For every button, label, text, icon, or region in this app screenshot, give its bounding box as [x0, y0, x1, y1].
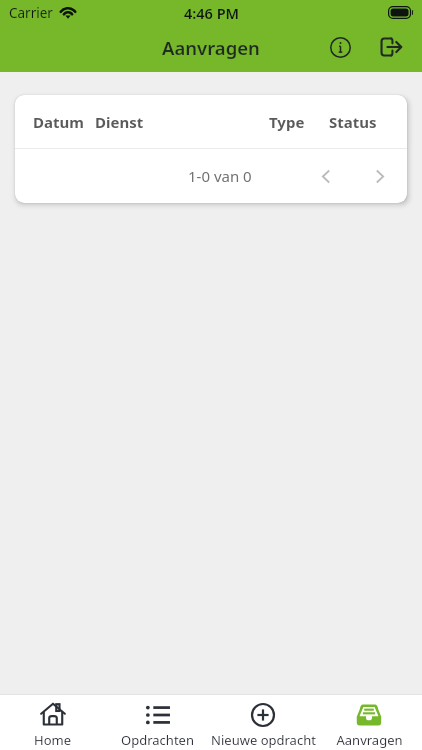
staticText: Status	[329, 112, 377, 132]
button[interactable]: Nieuwe opdracht	[210, 695, 316, 750]
staticText: Datum	[33, 112, 84, 132]
staticText: Carrier	[9, 4, 53, 22]
staticText: Aanvragen	[336, 731, 403, 749]
button[interactable]: Next page	[364, 160, 396, 192]
staticText: Type	[269, 112, 305, 132]
staticText: 1-0 van 0	[188, 166, 252, 186]
button[interactable]: Log out	[370, 26, 412, 68]
button[interactable]: Opdrachten	[105, 695, 210, 750]
button[interactable]: Previous page	[310, 160, 342, 192]
staticText: Nieuwe opdracht	[211, 731, 316, 749]
staticText: Opdrachten	[121, 731, 194, 749]
button[interactable]: Home	[0, 695, 105, 750]
staticText: 4:46 PM	[184, 3, 240, 23]
staticText: Aanvragen	[162, 35, 260, 60]
staticText: Home	[34, 731, 71, 749]
button[interactable]: Aanvragen	[316, 695, 422, 750]
staticText: Dienst	[95, 112, 144, 132]
button[interactable]: Info	[311, 26, 370, 68]
